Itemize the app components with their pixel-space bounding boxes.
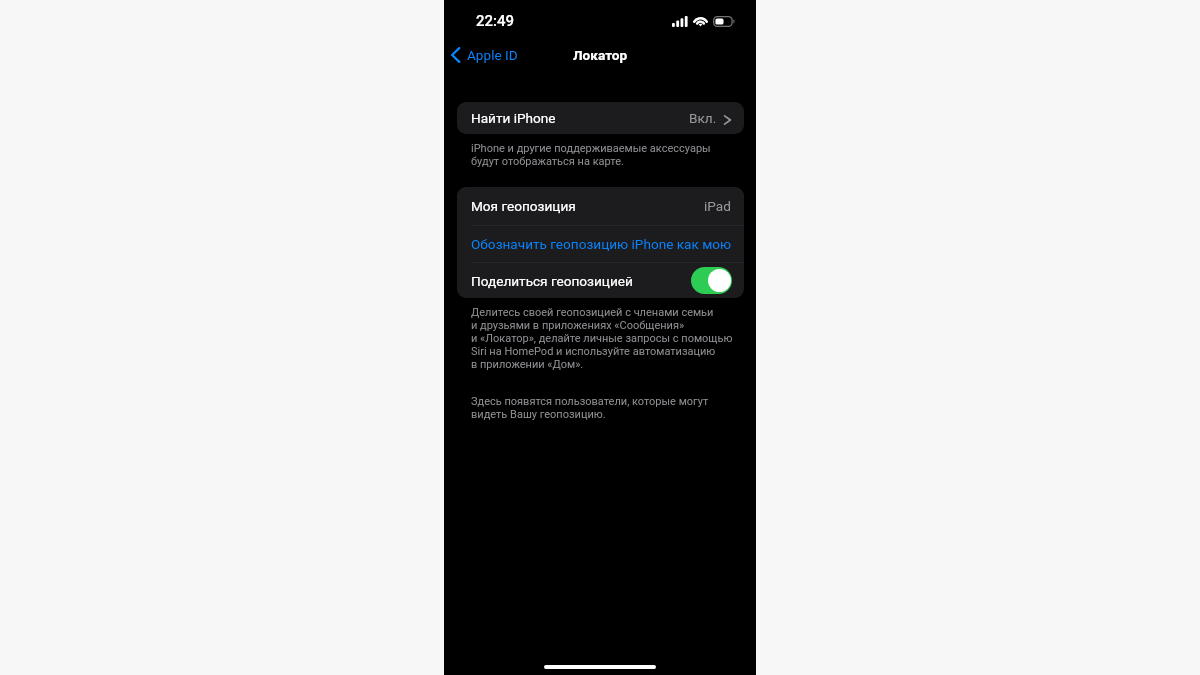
staticText: Моя геопозиция [471, 198, 576, 214]
staticText: iPad [704, 198, 731, 214]
button[interactable]: Моя геопозиция [457, 187, 744, 225]
button[interactable]: Найти iPhone [457, 102, 744, 134]
staticText: Найти iPhone [471, 110, 556, 126]
button[interactable]: Поделиться геопозицией [691, 267, 732, 294]
staticText: Локатор [573, 47, 628, 63]
button[interactable]: Поделиться геопозицией [457, 263, 744, 298]
staticText: Вкл. [689, 110, 717, 126]
staticText: Поделиться геопозицией [471, 273, 633, 289]
staticText: 22:49 [476, 12, 515, 30]
staticText: Делитесь своей геопозицией с членами сем… [471, 306, 733, 371]
staticText: Обозначить геопозицию iPhone как мою [471, 236, 732, 252]
staticText: iPhone и другие поддерживаемые аксессуар… [471, 142, 711, 168]
button[interactable]: Назад к Apple ID [444, 42, 526, 68]
staticText: Здесь появятся пользователи, которые мог… [471, 395, 709, 421]
button[interactable]: Обозначить геопозицию iPhone как мою [457, 226, 744, 262]
staticText: Apple ID [467, 47, 518, 63]
